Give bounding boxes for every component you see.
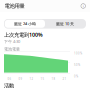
staticText: i [83,3,84,9]
button[interactable]: Info [81,4,85,8]
staticText: 09 [18,77,22,81]
staticText: 0% [74,75,78,78]
staticText: 21 [62,77,66,81]
staticText: 100% [74,52,82,55]
staticText: 15 [40,77,44,81]
staticText: 06 [7,77,11,81]
staticText: 18 [51,77,55,81]
staticText: 活動 [4,82,14,89]
staticText: 12 [29,77,33,81]
staticText: 50% [74,63,80,67]
staticText: 最近 24 小時 [14,21,36,26]
button[interactable]: 最近 24 小時 [4,19,86,29]
staticText: 下午 4:30 [4,39,20,44]
staticText: 電池電量 [4,47,20,52]
staticText: 電池用量 [4,3,24,9]
staticText: 上次充電到100% [4,31,43,38]
staticText: 最近 10 天 [56,21,74,26]
